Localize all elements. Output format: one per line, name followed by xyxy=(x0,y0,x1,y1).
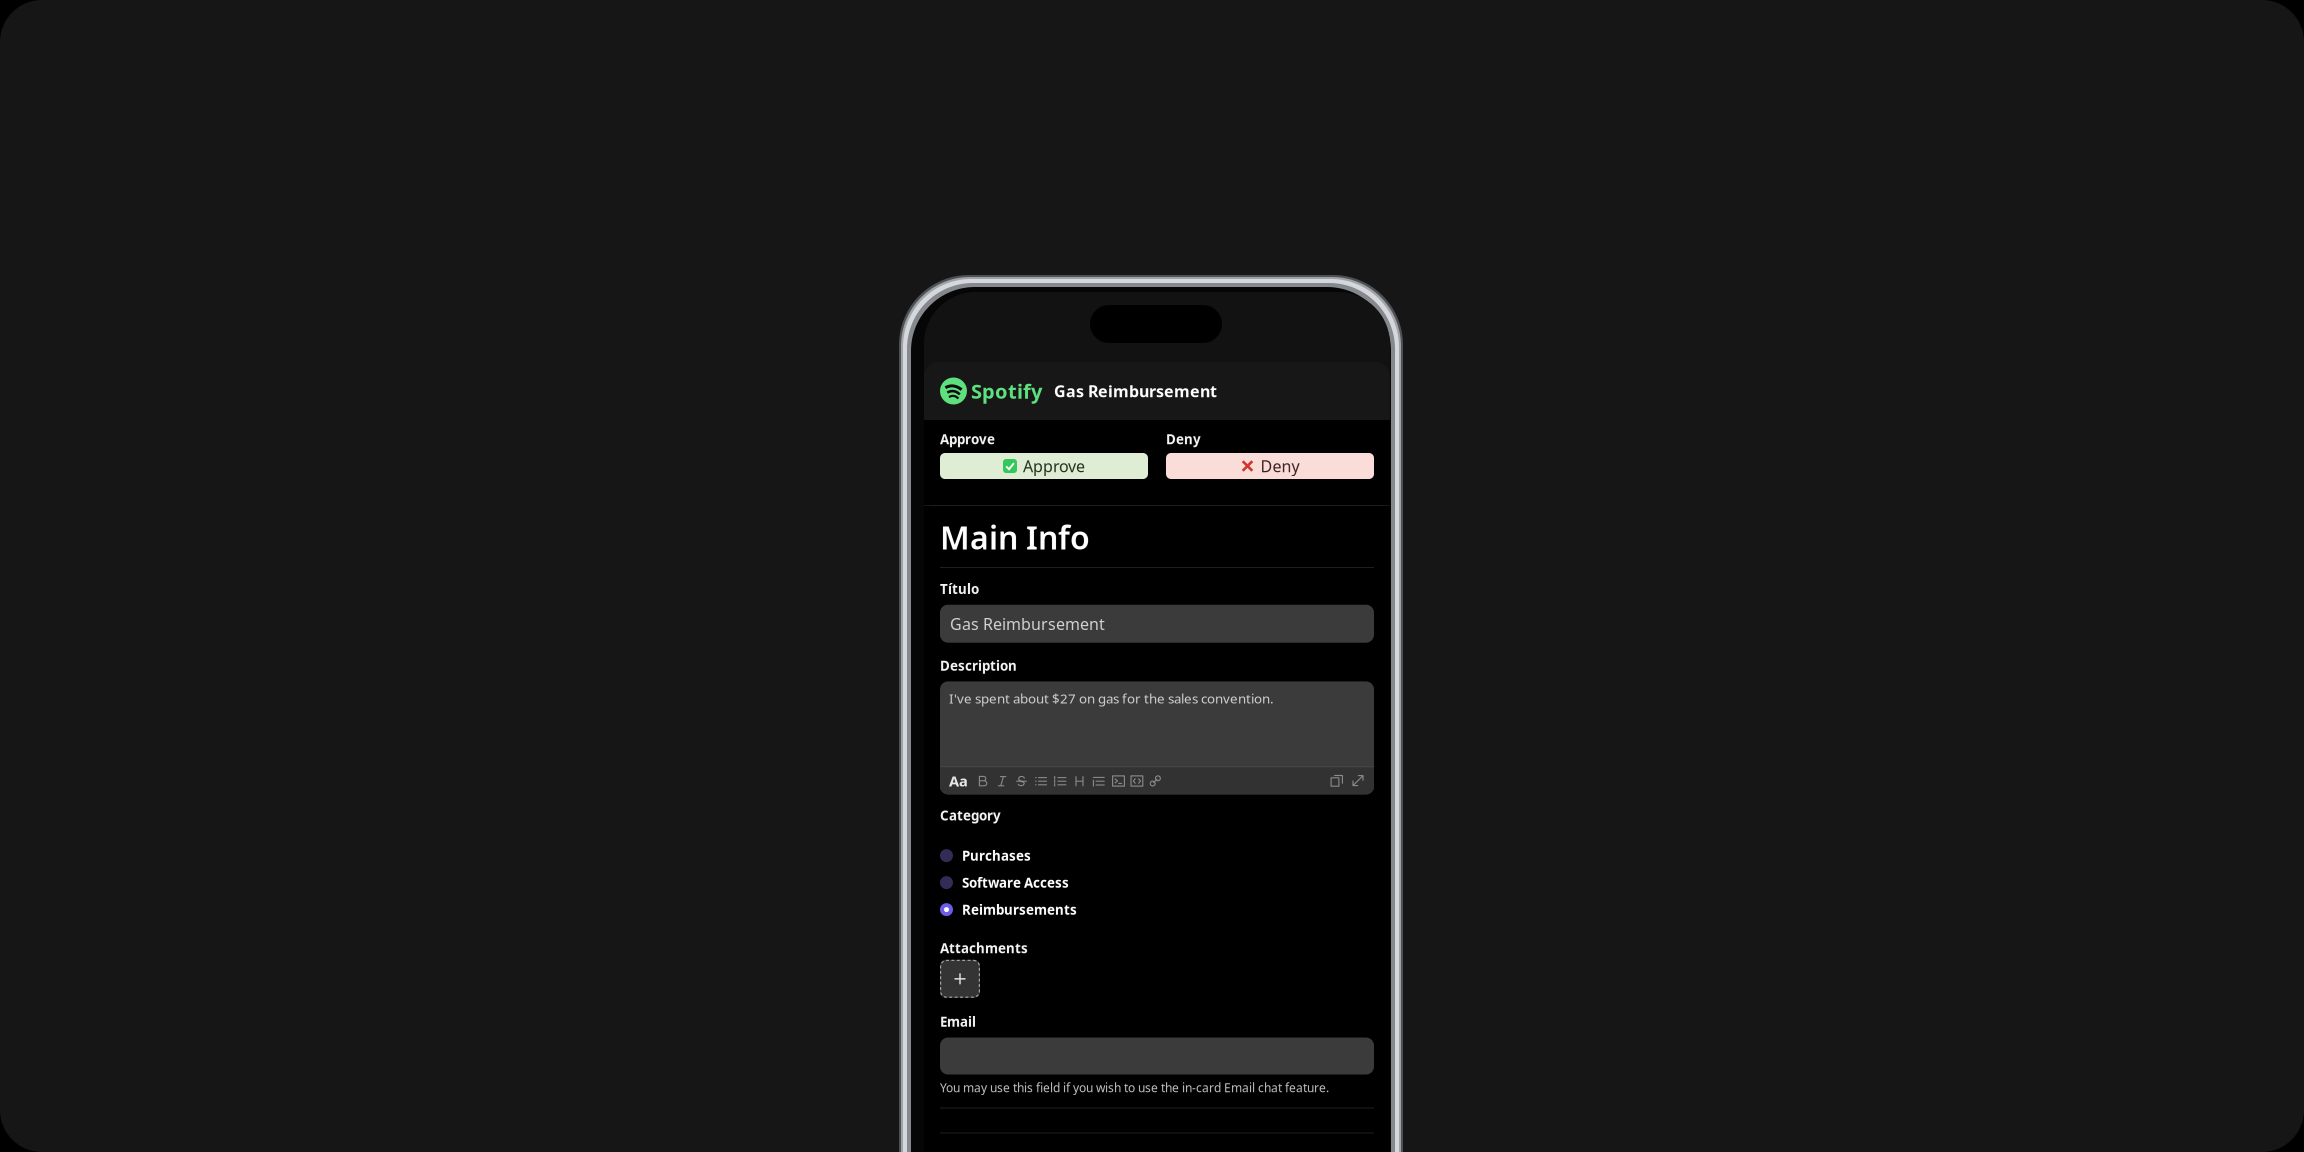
staticText: Purchases xyxy=(962,847,1031,864)
button[interactable]: Numbered list xyxy=(1054,774,1067,788)
button[interactable]: Blockquote xyxy=(1092,774,1106,788)
button[interactable]: Bulleted list xyxy=(1034,774,1048,788)
button[interactable]: Italic xyxy=(995,774,1009,788)
staticText: Email xyxy=(940,1013,976,1030)
button[interactable]: Inline code xyxy=(1130,774,1144,788)
button[interactable]: Strikethrough xyxy=(1015,774,1028,788)
button[interactable]: Text style xyxy=(949,771,968,791)
staticText: Título xyxy=(940,580,979,598)
staticText: Description xyxy=(940,657,1017,674)
staticText: Gas Reimbursement xyxy=(1054,380,1217,402)
staticText: Gas Reimbursement xyxy=(950,613,1105,634)
staticText: You may use this field if you wish to us… xyxy=(940,1079,1329,1095)
staticText: Reimbursements xyxy=(962,901,1077,918)
button[interactable]: Software Access xyxy=(940,869,1374,896)
button[interactable]: Insert link xyxy=(1149,774,1162,788)
button[interactable]: Expand editor xyxy=(1352,774,1365,788)
button[interactable]: Reimbursements xyxy=(940,896,1374,923)
staticText: Approve xyxy=(1023,455,1085,477)
staticText: Category xyxy=(940,806,1001,824)
staticText: Approve xyxy=(940,430,995,448)
button[interactable]: Heading xyxy=(1073,774,1086,788)
staticText: Main Info xyxy=(940,516,1090,558)
button[interactable]: Deny xyxy=(1166,453,1374,479)
staticText: Aa xyxy=(949,771,968,791)
button[interactable]: Code block xyxy=(1112,774,1125,788)
staticText: Software Access xyxy=(962,874,1069,891)
button[interactable]: Add attachment xyxy=(940,960,980,998)
staticText: Spotify xyxy=(971,378,1042,404)
staticText: Attachments xyxy=(940,939,1028,957)
button[interactable]: Purchases xyxy=(940,842,1374,869)
button[interactable]: Duplicate xyxy=(1330,774,1344,788)
staticText: Deny xyxy=(1166,430,1201,448)
staticText: I've spent about $27 on gas for the sale… xyxy=(949,689,1274,707)
button[interactable]: Approve xyxy=(940,453,1148,479)
button[interactable]: Bold xyxy=(976,774,989,788)
staticText: Deny xyxy=(1260,455,1299,477)
